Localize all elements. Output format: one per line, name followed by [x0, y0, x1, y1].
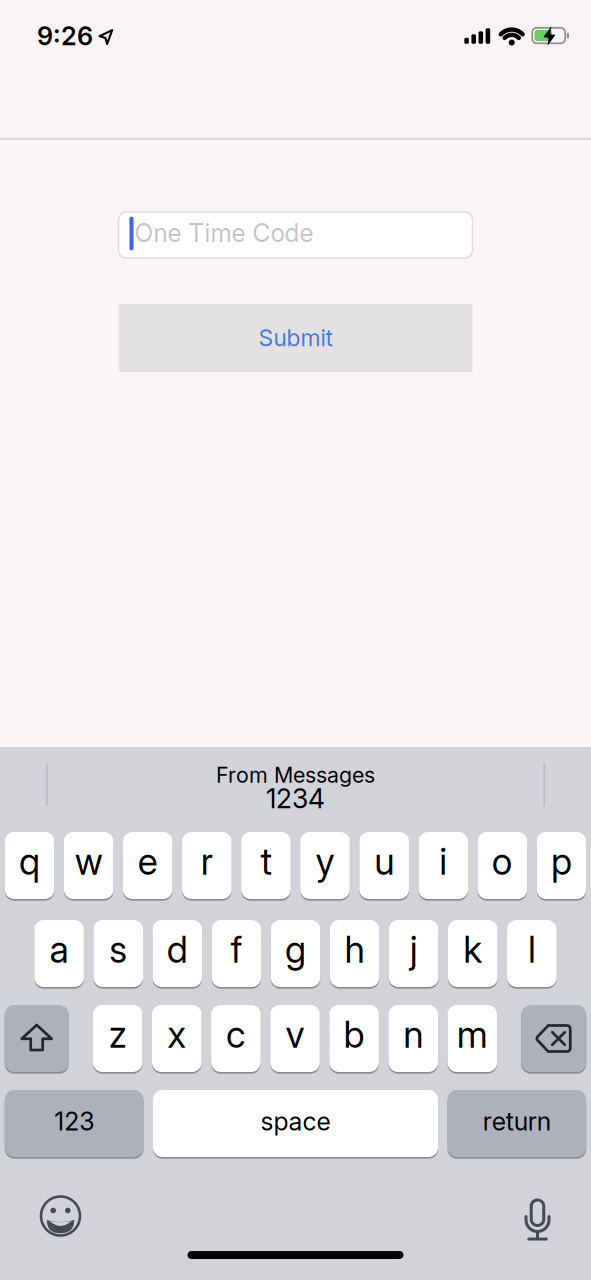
button[interactable]: o [478, 832, 527, 899]
staticText: t [260, 840, 271, 883]
staticText: 123 [54, 1107, 94, 1136]
button[interactable]: x [152, 1005, 202, 1072]
button[interactable]: h [330, 920, 379, 987]
button[interactable]: Delete [521, 1005, 586, 1072]
button[interactable]: e [123, 832, 172, 899]
staticText: j [410, 928, 418, 971]
button[interactable]: t [241, 832, 291, 899]
button[interactable]: Dictate [526, 1195, 549, 1237]
staticText: One Time Code [134, 218, 313, 247]
staticText: return [483, 1107, 551, 1136]
button[interactable]: r [182, 832, 232, 899]
staticText: l [528, 928, 536, 971]
button[interactable]: p [537, 832, 586, 899]
staticText: y [315, 840, 334, 883]
button[interactable]: One Time Code [118, 212, 472, 258]
staticText: n [403, 1013, 423, 1056]
staticText: z [109, 1013, 127, 1056]
button[interactable]: Shift [5, 1005, 69, 1072]
button[interactable]: g [271, 920, 320, 987]
staticText: w [75, 840, 103, 883]
button[interactable]: s [93, 920, 143, 987]
button[interactable]: m [447, 1005, 497, 1072]
staticText: o [492, 840, 513, 883]
staticText: d [167, 928, 188, 971]
button[interactable]: 123 [5, 1090, 143, 1157]
staticText: r [201, 840, 213, 883]
staticText: space [260, 1107, 330, 1136]
button[interactable]: z [93, 1005, 142, 1072]
staticText: q [19, 840, 40, 883]
button[interactable]: b [329, 1005, 379, 1072]
staticText: 1234 [266, 783, 325, 814]
staticText: 9:26 [37, 21, 93, 51]
button[interactable]: 1234 [50, 781, 540, 815]
button[interactable]: space [153, 1090, 438, 1157]
staticText: u [374, 840, 394, 883]
staticText: a [50, 928, 69, 971]
staticText: x [167, 1013, 186, 1056]
button[interactable]: c [211, 1005, 261, 1072]
staticText: s [109, 928, 127, 971]
button[interactable]: y [300, 832, 350, 899]
staticText: e [138, 840, 158, 883]
staticText: h [345, 928, 365, 971]
staticText: f [230, 928, 242, 971]
staticText: v [285, 1013, 304, 1056]
button[interactable]: d [152, 920, 202, 987]
staticText: k [463, 928, 482, 971]
staticText: p [551, 840, 572, 883]
staticText: From Messages [216, 762, 375, 788]
button[interactable]: q [5, 832, 54, 899]
button[interactable]: u [359, 832, 409, 899]
staticText: m [457, 1013, 488, 1056]
staticText: b [344, 1013, 365, 1056]
button[interactable]: Emoji [40, 1195, 81, 1236]
button[interactable]: Submit [118, 304, 472, 372]
button[interactable]: l [507, 920, 557, 987]
button[interactable]: return [447, 1090, 586, 1157]
staticText: c [226, 1013, 246, 1056]
button[interactable]: a [34, 920, 84, 987]
button[interactable]: j [389, 920, 438, 987]
button[interactable]: w [64, 832, 113, 899]
button[interactable]: f [212, 920, 261, 987]
button[interactable]: k [448, 920, 498, 987]
staticText: i [439, 840, 447, 883]
button[interactable]: v [270, 1005, 320, 1072]
staticText: g [285, 928, 306, 971]
button[interactable]: i [418, 832, 468, 899]
staticText: Submit [258, 324, 332, 351]
button[interactable]: n [388, 1005, 438, 1072]
